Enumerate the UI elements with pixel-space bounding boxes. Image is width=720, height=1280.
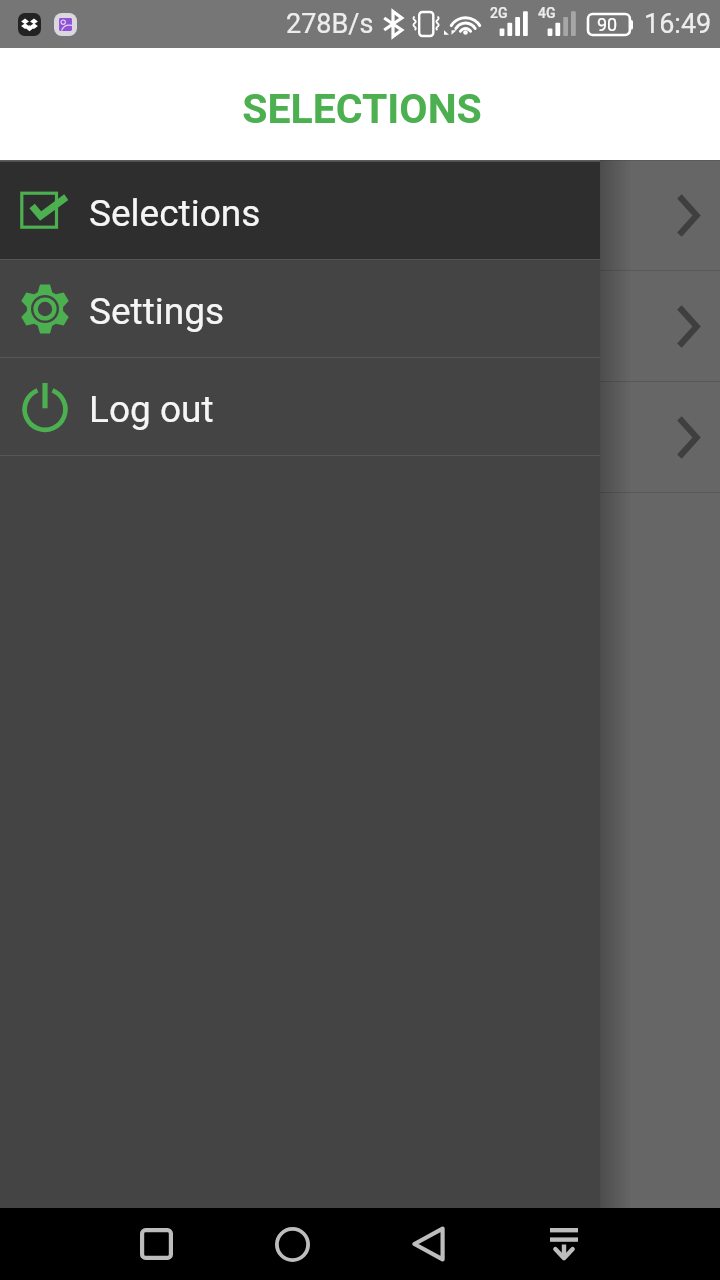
staticText: 4G — [538, 5, 556, 21]
staticText: 16:49 — [644, 8, 712, 40]
staticText: 2G — [490, 5, 508, 21]
button[interactable]: Recent apps — [88, 1208, 224, 1280]
staticText: Log out — [89, 388, 214, 431]
staticText: Settings — [89, 290, 225, 333]
staticText: SELECTIONS — [242, 85, 482, 133]
staticText: Selections — [89, 192, 261, 235]
staticText: 278B/s — [286, 8, 374, 40]
button[interactable]: List item — [0, 161, 720, 270]
button[interactable]: Selections — [0, 162, 600, 259]
button[interactable]: List item — [0, 271, 720, 381]
button[interactable]: Home — [224, 1208, 360, 1280]
button[interactable]: List item — [0, 382, 720, 492]
button[interactable]: Back — [360, 1208, 496, 1280]
button[interactable]: Hide navigation bar — [496, 1208, 632, 1280]
button[interactable]: Settings — [0, 260, 600, 357]
button[interactable]: Log out — [0, 358, 600, 455]
staticText: 90 — [597, 14, 618, 35]
